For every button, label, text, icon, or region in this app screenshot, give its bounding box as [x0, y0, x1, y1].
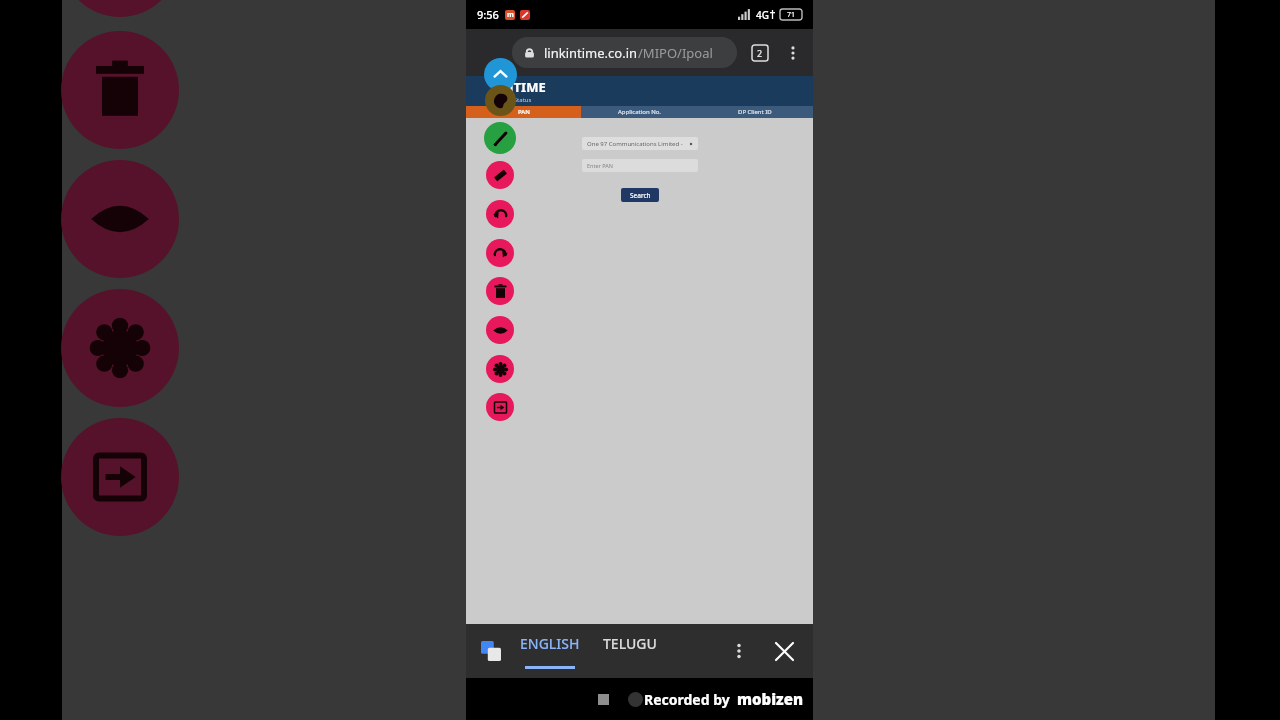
- button[interactable]: ENGLISH: [520, 634, 580, 669]
- button[interactable]: Undo: [486, 200, 514, 228]
- staticText: Application No.: [618, 108, 661, 116]
- button[interactable]: Exit: [486, 393, 514, 421]
- staticText: 71: [787, 10, 796, 20]
- button[interactable]: More options: [780, 40, 806, 66]
- button[interactable]: linkintime.co.in: [512, 37, 737, 68]
- button[interactable]: Eraser: [486, 161, 514, 189]
- button[interactable]: Delete: [486, 277, 514, 305]
- staticText: 2: [757, 47, 763, 59]
- button[interactable]: Search: [621, 188, 659, 202]
- staticText: 9:56: [477, 7, 499, 22]
- button[interactable]: Show: [486, 316, 514, 344]
- button[interactable]: Tabs: 2: [748, 41, 772, 65]
- staticText: /MIPO/Ipoal: [638, 44, 713, 62]
- staticText: 4G: [756, 8, 769, 22]
- staticText: mobizen: [737, 689, 804, 709]
- staticText: linkintime.co.in: [544, 44, 638, 62]
- button[interactable]: TELUGU: [603, 634, 657, 668]
- staticText: ENGLISH: [520, 634, 580, 653]
- staticText: PAN: [518, 108, 530, 116]
- staticText: m: [507, 10, 514, 20]
- staticText: DP Client ID: [738, 108, 772, 116]
- button[interactable]: More: [725, 637, 753, 665]
- button[interactable]: Settings: [486, 355, 514, 383]
- staticText: Recorded by: [644, 690, 730, 709]
- button[interactable]: One 97 Communications Limited -: [582, 137, 698, 150]
- staticText: ent Status: [503, 96, 532, 104]
- button[interactable]: Google Translate: [481, 641, 501, 661]
- button[interactable]: Brush: [484, 122, 516, 154]
- staticText: Search: [630, 191, 651, 200]
- staticText: TELUGU: [603, 634, 657, 653]
- button[interactable]: Application No.: [581, 106, 697, 118]
- button[interactable]: DP Client ID: [697, 106, 813, 118]
- button[interactable]: Close: [770, 637, 798, 665]
- button[interactable]: Collapse: [484, 58, 517, 91]
- staticText: One 97 Communications Limited -: [587, 140, 683, 148]
- staticText: Enter PAN: [587, 162, 613, 169]
- button[interactable]: Palette: [485, 85, 516, 116]
- button[interactable]: Enter PAN: [582, 159, 698, 172]
- staticText: NTIME: [503, 78, 546, 96]
- button[interactable]: Redo: [486, 239, 514, 267]
- button[interactable]: PAN: [466, 106, 581, 118]
